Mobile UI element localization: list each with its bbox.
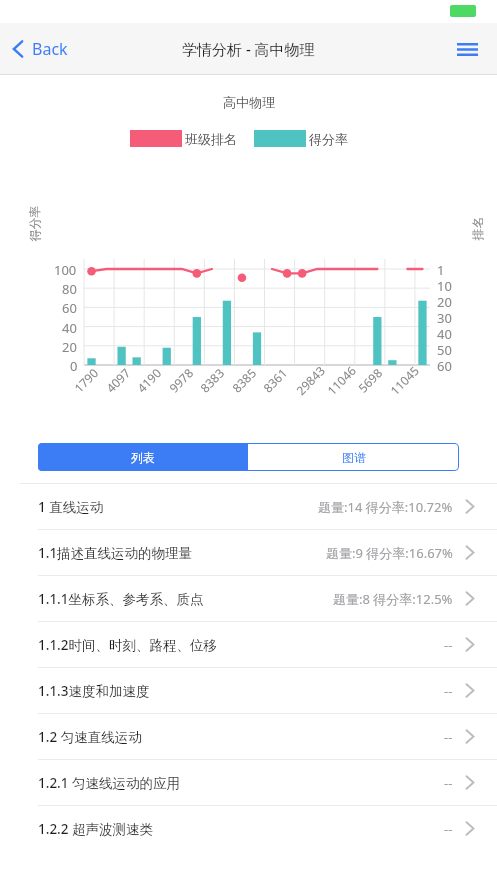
staticText: -- xyxy=(444,820,453,838)
staticText: 20 xyxy=(437,293,452,311)
staticText: 1.1.3速度和加速度 xyxy=(38,682,150,700)
button[interactable]: 1.1.2时间、时刻、路程、位移 xyxy=(0,622,497,667)
staticText: 80 xyxy=(62,280,77,298)
staticText: Back xyxy=(32,38,68,60)
staticText: 60 xyxy=(62,299,77,317)
staticText: 1.2.1 匀速线运动的应用 xyxy=(38,774,181,792)
button[interactable]: 列表 xyxy=(38,443,248,471)
staticText: 10 xyxy=(437,277,452,295)
button[interactable]: Back xyxy=(6,31,74,67)
staticText: 60 xyxy=(437,357,452,375)
staticText: 9978 xyxy=(165,364,196,395)
staticText: 11045 xyxy=(386,362,423,398)
button[interactable]: 1.1.1坐标系、参考系、质点 xyxy=(0,576,497,621)
staticText: 图谱 xyxy=(342,450,366,465)
staticText: 题量:9 得分率:16.67% xyxy=(326,544,453,562)
button[interactable]: 1.2 匀速直线运动 xyxy=(0,714,497,759)
staticText: 得分率 xyxy=(26,205,41,241)
staticText: 高中物理 xyxy=(223,94,275,110)
staticText: 1.2 匀速直线运动 xyxy=(38,728,142,746)
staticText: 1 xyxy=(437,261,445,279)
staticText: 题量:14 得分率:10.72% xyxy=(318,498,453,516)
staticText: 30 xyxy=(437,309,452,327)
button[interactable]: Menu xyxy=(450,36,485,63)
staticText: 学情分析 - 高中物理 xyxy=(182,39,315,59)
staticText: 29843 xyxy=(292,362,329,398)
staticText: 排名 xyxy=(469,216,484,240)
staticText: 班级排名 xyxy=(185,131,237,147)
button[interactable]: 1.2.1 匀速线运动的应用 xyxy=(0,760,497,805)
staticText: 1.1.2时间、时刻、路程、位移 xyxy=(38,636,218,654)
button[interactable]: 1.1.3速度和加速度 xyxy=(0,668,497,713)
staticText: 50 xyxy=(437,341,452,359)
staticText: -- xyxy=(444,682,453,700)
staticText: 100 xyxy=(54,261,77,279)
staticText: 8361 xyxy=(259,364,290,395)
staticText: 1.1.1坐标系、参考系、质点 xyxy=(38,590,204,608)
staticText: 4097 xyxy=(102,364,133,395)
staticText: 1.1描述直线运动的物理量 xyxy=(38,544,193,562)
staticText: 得分率 xyxy=(309,131,348,147)
staticText: 4190 xyxy=(133,364,164,395)
staticText: 8383 xyxy=(196,364,227,395)
button[interactable]: 图谱 xyxy=(248,443,459,471)
staticText: 0 xyxy=(70,357,78,375)
staticText: 1790 xyxy=(70,364,101,395)
staticText: -- xyxy=(444,774,453,792)
staticText: 列表 xyxy=(131,450,155,465)
staticText: 1 直线运动 xyxy=(38,498,104,516)
staticText: 8385 xyxy=(228,364,259,395)
button[interactable]: 1 直线运动 xyxy=(0,484,497,529)
staticText: 40 xyxy=(437,325,452,343)
staticText: 1.2.2 超声波测速类 xyxy=(38,820,154,838)
staticText: 40 xyxy=(62,319,77,337)
button[interactable]: 1.1描述直线运动的物理量 xyxy=(0,530,497,575)
button[interactable]: 1.2.2 超声波测速类 xyxy=(0,806,497,851)
staticText: -- xyxy=(444,636,453,654)
staticText: 11046 xyxy=(323,362,360,398)
staticText: 题量:8 得分率:12.5% xyxy=(333,590,453,608)
staticText: -- xyxy=(444,728,453,746)
staticText: 20 xyxy=(62,338,77,356)
staticText: 5698 xyxy=(354,364,385,395)
